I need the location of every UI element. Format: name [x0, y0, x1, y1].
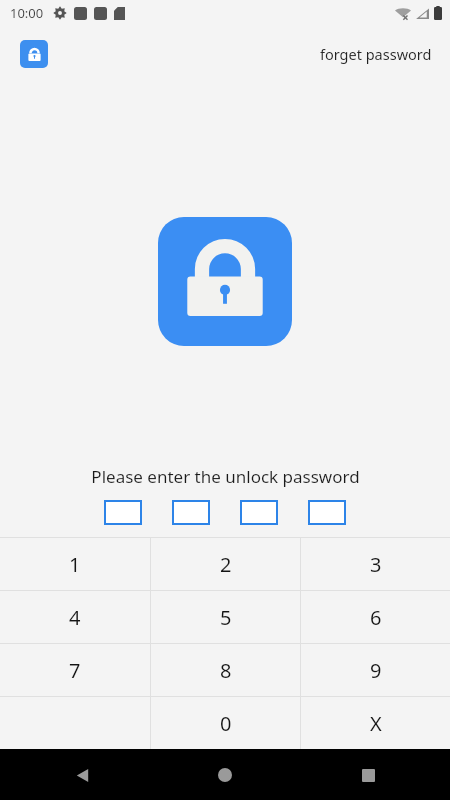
- staticText: 0: [220, 710, 232, 737]
- button[interactable]: 9: [301, 644, 450, 696]
- staticText: 8: [220, 657, 232, 684]
- button[interactable]: 0: [151, 697, 300, 749]
- button[interactable]: Back: [62, 755, 102, 795]
- staticText: 4: [69, 604, 81, 631]
- staticText: 7: [69, 657, 81, 684]
- staticText: Please enter the unlock password: [91, 465, 360, 488]
- button[interactable]: [308, 500, 346, 525]
- button[interactable]: 2: [151, 538, 300, 590]
- button[interactable]: 4: [0, 591, 150, 643]
- button[interactable]: 6: [301, 591, 450, 643]
- staticText: 3: [370, 551, 382, 578]
- button[interactable]: [172, 500, 210, 525]
- staticText: X: [370, 710, 382, 737]
- button[interactable]: 8: [151, 644, 300, 696]
- button[interactable]: Home: [205, 755, 245, 795]
- button[interactable]: [104, 500, 142, 525]
- staticText: 5: [220, 604, 232, 631]
- button[interactable]: 5: [151, 591, 300, 643]
- button[interactable]: 1: [0, 538, 150, 590]
- staticText: 9: [370, 657, 382, 684]
- staticText: forget password: [320, 44, 432, 64]
- button[interactable]: [240, 500, 278, 525]
- staticText: 1: [69, 551, 81, 578]
- button[interactable]: 7: [0, 644, 150, 696]
- button[interactable]: X: [301, 697, 450, 749]
- staticText: 10:00: [10, 4, 44, 22]
- button[interactable]: 3: [301, 538, 450, 590]
- button[interactable]: Recent apps: [348, 755, 388, 795]
- staticText: 2: [220, 551, 232, 578]
- button[interactable]: Lock: [20, 40, 48, 68]
- staticText: 6: [370, 604, 382, 631]
- button[interactable]: forget password: [318, 38, 434, 70]
